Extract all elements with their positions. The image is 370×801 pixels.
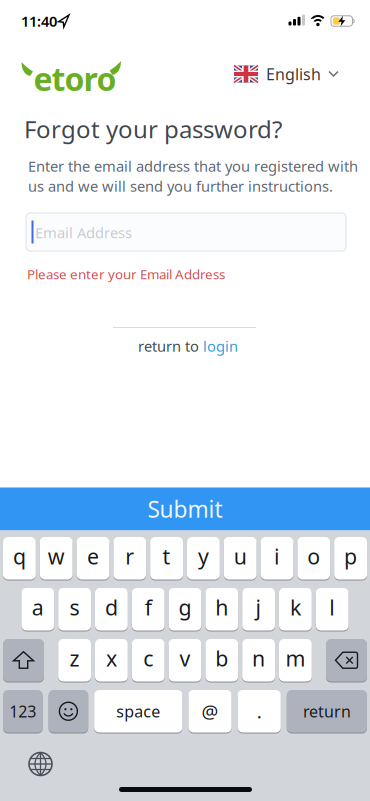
button[interactable]: Email Address bbox=[26, 213, 346, 251]
staticText: p bbox=[344, 542, 357, 570]
button[interactable]: i bbox=[261, 536, 293, 580]
staticText: us and we will send you further instruct… bbox=[28, 176, 333, 196]
button[interactable]: a bbox=[21, 587, 54, 631]
button[interactable]: Shift bbox=[3, 638, 44, 682]
button[interactable]: @ bbox=[188, 689, 232, 733]
staticText: s bbox=[70, 593, 80, 621]
button[interactable]: space bbox=[94, 689, 182, 733]
button[interactable]: x bbox=[95, 638, 128, 682]
staticText: o bbox=[307, 542, 320, 570]
button[interactable]: k bbox=[279, 587, 312, 631]
button[interactable]: t bbox=[150, 536, 183, 580]
button[interactable]: f bbox=[132, 587, 165, 631]
staticText: v bbox=[179, 644, 190, 672]
button[interactable]: Next keyboard bbox=[27, 751, 53, 777]
button[interactable]: Delete bbox=[326, 638, 367, 682]
button[interactable]: English bbox=[234, 63, 338, 85]
staticText: Email Address bbox=[35, 223, 132, 242]
staticText: Forgot your password? bbox=[24, 113, 282, 145]
button[interactable]: y bbox=[187, 536, 220, 580]
button[interactable]: b bbox=[205, 638, 238, 682]
staticText: return bbox=[303, 701, 351, 722]
staticText: login bbox=[203, 336, 238, 356]
staticText: x bbox=[106, 644, 117, 672]
button[interactable]: e bbox=[77, 536, 109, 580]
button[interactable]: j bbox=[242, 587, 275, 631]
button[interactable]: w bbox=[40, 536, 73, 580]
staticText: g bbox=[178, 593, 191, 621]
staticText: t bbox=[163, 542, 171, 570]
button[interactable]: r bbox=[113, 536, 146, 580]
button[interactable]: login bbox=[203, 336, 238, 356]
button[interactable]: g bbox=[169, 587, 201, 631]
button[interactable]: s bbox=[58, 587, 91, 631]
button[interactable]: l bbox=[316, 587, 349, 631]
staticText: n bbox=[252, 644, 265, 672]
staticText: j bbox=[256, 593, 262, 621]
staticText: 11:40 bbox=[21, 11, 57, 31]
staticText: q bbox=[13, 542, 26, 570]
staticText: f bbox=[145, 593, 152, 621]
staticText: return to bbox=[138, 336, 199, 356]
button[interactable]: p bbox=[334, 536, 367, 580]
staticText: d bbox=[105, 593, 118, 621]
staticText: space bbox=[116, 701, 160, 722]
button[interactable]: 123 bbox=[3, 689, 43, 733]
button[interactable]: c bbox=[132, 638, 165, 682]
button[interactable]: n bbox=[242, 638, 275, 682]
staticText: 123 bbox=[9, 701, 36, 722]
staticText: Enter the email address that you registe… bbox=[28, 156, 358, 176]
staticText: e bbox=[87, 542, 99, 570]
staticText: a bbox=[32, 593, 44, 621]
button[interactable]: o bbox=[297, 536, 330, 580]
staticText: z bbox=[70, 644, 80, 672]
button[interactable]: h bbox=[205, 587, 238, 631]
staticText: h bbox=[215, 593, 228, 621]
staticText: . bbox=[257, 699, 262, 724]
button[interactable]: Submit bbox=[0, 487, 370, 530]
button[interactable]: d bbox=[95, 587, 128, 631]
button[interactable]: q bbox=[3, 536, 36, 580]
staticText: @ bbox=[201, 699, 218, 724]
staticText: Please enter your Email Address bbox=[27, 265, 225, 283]
button[interactable]: Emoji bbox=[49, 689, 88, 733]
staticText: u bbox=[234, 542, 247, 570]
button[interactable]: u bbox=[224, 536, 257, 580]
button[interactable]: return bbox=[287, 689, 367, 733]
button[interactable]: v bbox=[169, 638, 201, 682]
staticText: English bbox=[266, 63, 321, 85]
staticText: c bbox=[143, 644, 153, 672]
staticText: i bbox=[274, 542, 280, 570]
staticText: m bbox=[285, 644, 305, 672]
staticText: w bbox=[48, 542, 65, 570]
button[interactable]: z bbox=[58, 638, 91, 682]
staticText: k bbox=[290, 593, 301, 621]
staticText: etoro bbox=[33, 57, 116, 100]
staticText: b bbox=[215, 644, 228, 672]
staticText: y bbox=[198, 542, 209, 570]
staticText: r bbox=[125, 542, 134, 570]
staticText: l bbox=[329, 593, 335, 621]
staticText: Submit bbox=[147, 494, 222, 524]
button[interactable]: m bbox=[279, 638, 312, 682]
button[interactable]: . bbox=[238, 689, 281, 733]
